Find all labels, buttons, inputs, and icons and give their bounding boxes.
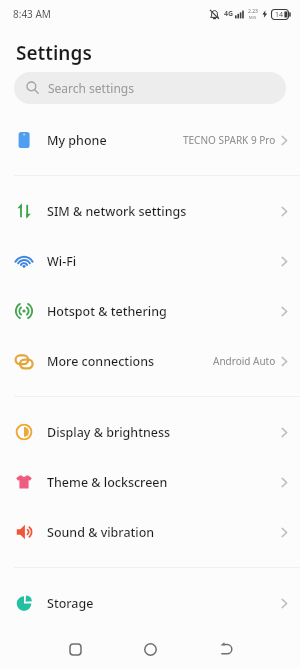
staticText: M/S — [249, 15, 257, 20]
staticText: Wi-Fi — [47, 253, 281, 270]
staticText: 4G — [224, 9, 234, 19]
staticText: Settings — [16, 40, 92, 66]
button[interactable]: Sound & vibration — [0, 507, 300, 557]
staticText: More connections — [47, 353, 213, 370]
button[interactable] — [188, 629, 263, 669]
button[interactable]: Wi-Fi — [0, 236, 300, 286]
button[interactable]: Hotspot & tethering — [0, 286, 300, 336]
staticText: My phone — [47, 132, 183, 149]
button[interactable]: More connections — [0, 336, 300, 386]
staticText: Theme & lockscreen — [47, 474, 281, 491]
staticText: TECNO SPARK 9 Pro — [183, 133, 276, 147]
staticText: Search settings — [48, 80, 134, 96]
button[interactable] — [38, 629, 113, 669]
button[interactable]: Storage — [0, 578, 300, 628]
staticText: Storage — [47, 595, 281, 612]
staticText: Sound & vibration — [47, 524, 281, 541]
staticText: 2.23 — [248, 8, 258, 15]
staticText: SIM & network settings — [47, 203, 281, 220]
staticText: Hotspot & tethering — [47, 303, 281, 320]
staticText: Android Auto — [213, 354, 276, 368]
button[interactable]: Search settings — [14, 72, 286, 104]
button[interactable] — [113, 629, 188, 669]
button[interactable]: Display & brightness — [0, 407, 300, 457]
staticText: Display & brightness — [47, 424, 281, 441]
staticText: 8:43 AM — [13, 7, 51, 21]
staticText: 14 — [275, 10, 284, 20]
button[interactable]: My phone — [0, 115, 300, 165]
button[interactable]: Theme & lockscreen — [0, 457, 300, 507]
button[interactable]: SIM & network settings — [0, 186, 300, 236]
